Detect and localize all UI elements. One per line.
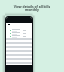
button[interactable] xyxy=(10,29,30,32)
button[interactable]: App header xyxy=(6,17,32,23)
staticText: View details of all bills monthly xyxy=(1,4,63,12)
button[interactable] xyxy=(10,32,30,35)
button[interactable] xyxy=(10,35,30,38)
